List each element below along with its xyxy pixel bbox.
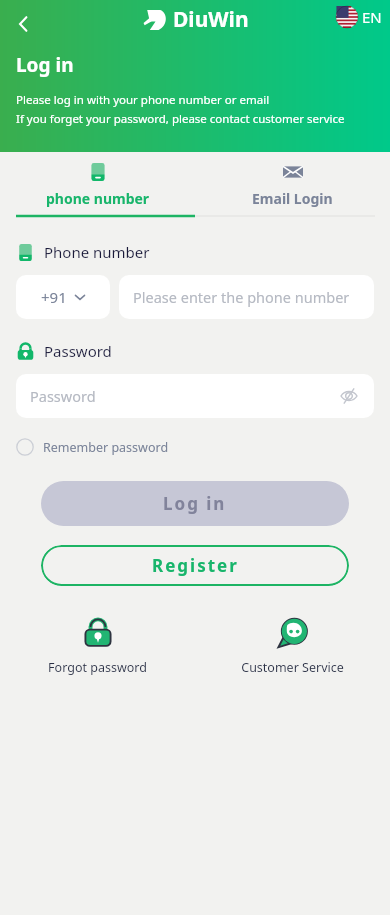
button[interactable]: Password [16,374,374,418]
button[interactable]: Please enter the phone number [119,275,374,319]
button[interactable]: EN [336,6,382,28]
button[interactable]: Register [41,545,349,586]
button[interactable]: Show password [336,383,362,409]
staticText: Log in [163,492,227,515]
button[interactable]: Forgot password [0,616,195,676]
staticText: Phone number [44,242,150,262]
staticText: Register [152,554,239,577]
button[interactable]: Log in [41,481,349,526]
staticText: Customer Service [241,659,344,676]
staticText: EN [362,7,382,27]
button[interactable]: Remember password [14,436,171,458]
button[interactable]: +91 [16,275,110,319]
staticText: Password [30,386,96,406]
button[interactable]: Email Login [195,152,390,218]
staticText: Email Login [252,189,333,208]
staticText: Forgot password [48,659,147,676]
staticText: +91 [41,287,67,307]
staticText: Remember password [43,439,169,456]
staticText: phone number [46,189,150,208]
staticText: DiuWin [173,5,249,34]
staticText: Please log in with your phone number or … [16,92,270,108]
staticText: Log in [16,52,74,78]
button[interactable]: Back [4,4,44,44]
staticText: Please enter the phone number [133,287,350,307]
staticText: Password [44,341,112,361]
button[interactable]: Customer Service [195,616,390,676]
staticText: If you forget your password, please cont… [16,111,345,127]
button[interactable]: phone number [0,152,195,218]
